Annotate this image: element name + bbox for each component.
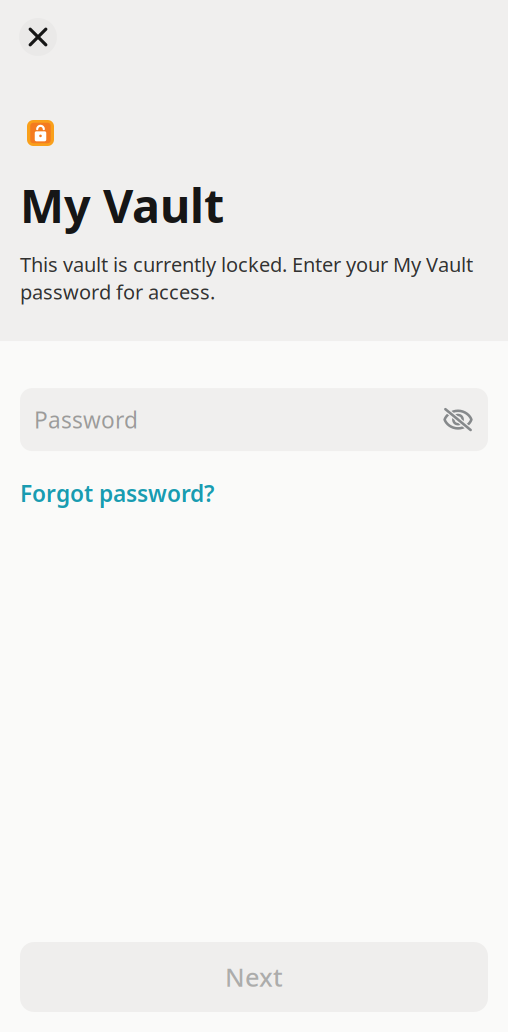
staticText: Password <box>34 404 138 435</box>
button[interactable]: Next <box>20 942 488 1012</box>
staticText: Forgot password? <box>20 478 214 508</box>
staticText: My Vault <box>20 174 224 236</box>
button[interactable]: Close <box>16 15 60 59</box>
button[interactable]: Show password <box>436 398 480 442</box>
staticText: Next <box>225 960 283 994</box>
button[interactable]: Forgot password? <box>0 451 234 516</box>
staticText: This vault is currently locked. Enter yo… <box>20 251 473 305</box>
